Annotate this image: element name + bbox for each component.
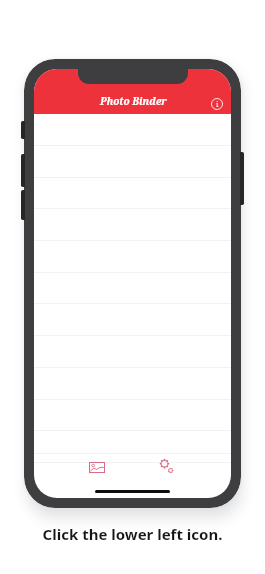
- button[interactable]: Info: [208, 95, 226, 113]
- staticText: Photo Binder: [100, 94, 167, 108]
- button[interactable]: Settings: [151, 453, 181, 481]
- button[interactable]: [34, 272, 231, 304]
- button[interactable]: [34, 177, 231, 209]
- button[interactable]: [34, 399, 231, 431]
- button[interactable]: Photos: [82, 453, 112, 481]
- staticText: i: [216, 99, 219, 109]
- staticText: Click the lower left icon.: [0, 524, 265, 544]
- button[interactable]: [34, 431, 231, 463]
